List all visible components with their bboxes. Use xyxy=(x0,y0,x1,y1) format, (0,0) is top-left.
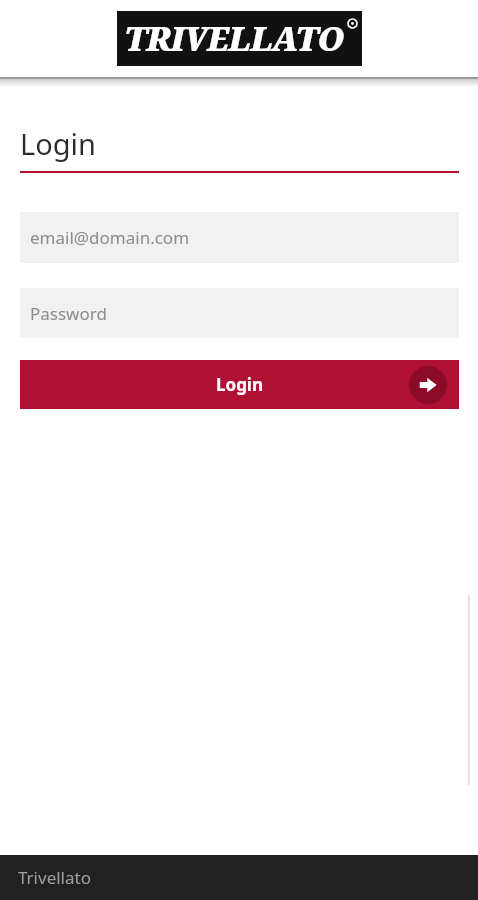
other: Submit login xyxy=(409,366,447,404)
button[interactable]: Password xyxy=(20,288,459,338)
staticText: TRIVELLATO xyxy=(124,16,344,61)
staticText: Password xyxy=(30,302,107,325)
staticText: Login xyxy=(20,124,96,163)
staticText: email@domain.com xyxy=(30,226,190,249)
button[interactable]: email@domain.com xyxy=(20,212,459,263)
other: Trivellato logo xyxy=(117,11,362,66)
staticText: Trivellato xyxy=(18,866,91,889)
button[interactable]: Login xyxy=(20,360,459,409)
button[interactable]: Trivellato xyxy=(0,855,478,900)
staticText: Login xyxy=(216,373,264,396)
